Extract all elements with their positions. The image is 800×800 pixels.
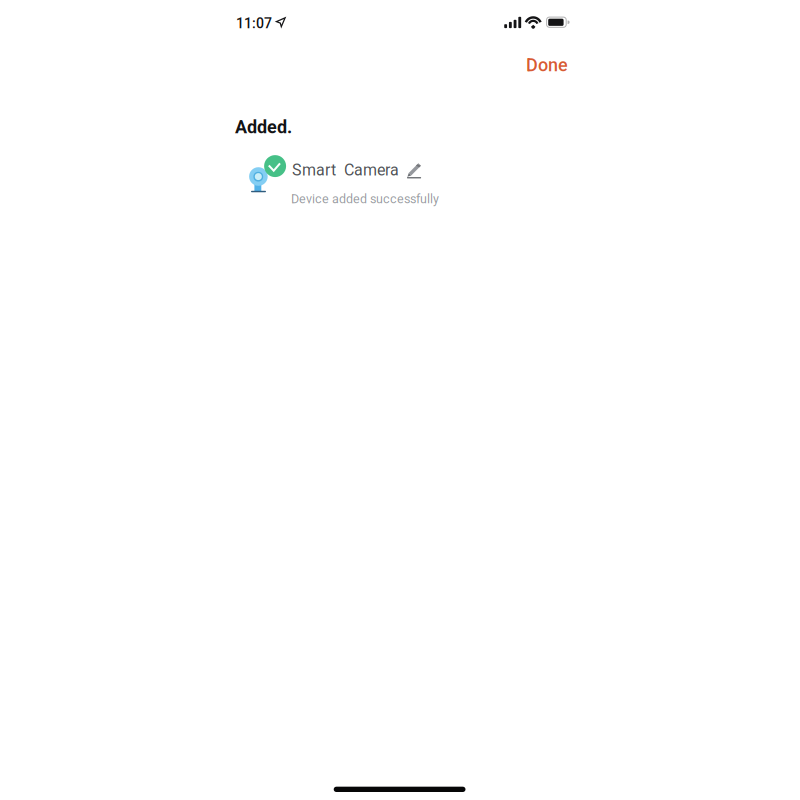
staticText: 11:07	[236, 15, 272, 32]
button[interactable]: Smart Camera	[292, 161, 404, 179]
staticText: Added.	[235, 116, 292, 138]
staticText: Done	[526, 54, 568, 76]
button[interactable]: Rename device	[407, 163, 427, 183]
staticText: Device added successfully	[291, 192, 439, 206]
button[interactable]: Done	[504, 50, 568, 80]
staticText: Smart Camera	[292, 161, 399, 179]
